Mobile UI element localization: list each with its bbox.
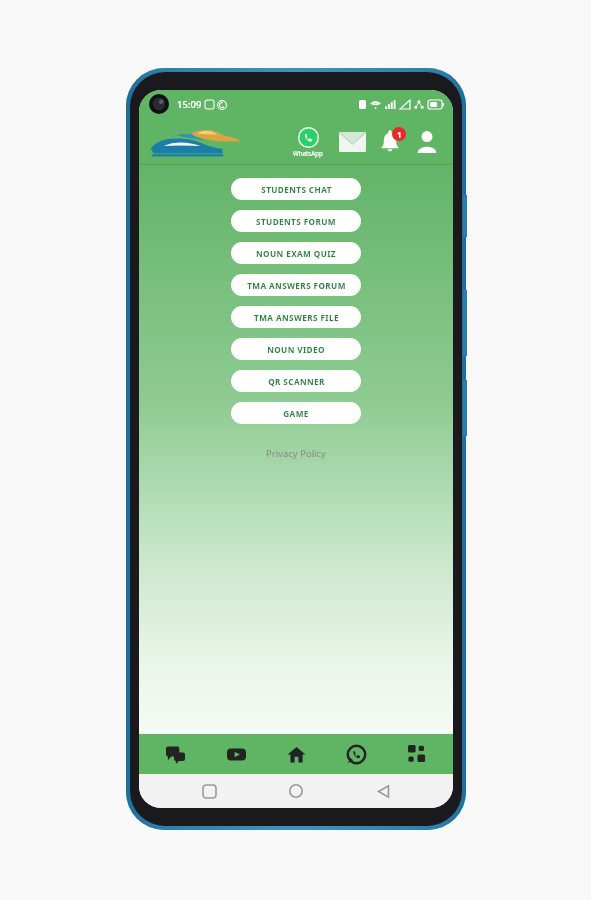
staticText: TMA ANSWERS FORUM: [247, 280, 346, 291]
button[interactable]: WhatsApp: [332, 734, 380, 774]
staticText: STUDENTS FORUM: [256, 216, 336, 227]
button[interactable]: STUDENTS CHAT: [231, 178, 361, 200]
button[interactable]: WhatsApp: [286, 125, 330, 159]
staticText: GAME: [283, 408, 309, 419]
button[interactable]: Recents: [192, 774, 226, 808]
staticText: NOUN VIDEO: [267, 344, 325, 355]
staticText: 15:09: [177, 98, 202, 111]
button[interactable]: NOUN EXAM QUIZ: [231, 242, 361, 264]
button[interactable]: Videos: [212, 734, 260, 774]
button[interactable]: STUDENTS FORUM: [231, 210, 361, 232]
button[interactable]: QR SCANNER: [231, 370, 361, 392]
button[interactable]: Home: [272, 734, 320, 774]
staticText: WhatsApp: [293, 149, 323, 157]
button[interactable]: Profile: [409, 124, 445, 160]
button[interactable]: Privacy Policy: [258, 443, 334, 464]
staticText: STUDENTS CHAT: [261, 184, 332, 195]
button[interactable]: TMA ANSWERS FORUM: [231, 274, 361, 296]
button[interactable]: Back: [366, 774, 400, 808]
staticText: 1: [397, 129, 402, 140]
button[interactable]: TMA ANSWERS FILE: [231, 306, 361, 328]
button[interactable]: More: [393, 734, 441, 774]
staticText: NOUN EXAM QUIZ: [256, 248, 336, 259]
staticText: QR SCANNER: [268, 376, 325, 387]
staticText: Privacy Policy: [266, 447, 326, 460]
button[interactable]: Messages: [334, 124, 370, 160]
button[interactable]: Home: [279, 774, 313, 808]
button[interactable]: NOUN VIDEO: [231, 338, 361, 360]
button[interactable]: Chats: [151, 734, 199, 774]
staticText: TMA ANSWERS FILE: [254, 312, 339, 323]
other: NOUN logo: [149, 125, 241, 159]
button[interactable]: Notifications: [372, 124, 408, 160]
button[interactable]: GAME: [231, 402, 361, 424]
